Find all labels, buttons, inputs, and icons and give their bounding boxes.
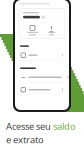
- staticText: Acesse seu: [6, 120, 51, 132]
- button[interactable]: Item da lista: [19, 72, 65, 82]
- button[interactable]: Pix: [23, 25, 42, 35]
- button[interactable]: Saldo disponível: [19, 9, 65, 38]
- staticText: e extrato: [6, 133, 44, 146]
- button[interactable]: Transferir: [42, 25, 61, 35]
- button[interactable]: Item da lista: [19, 50, 65, 60]
- staticText: saldo: [53, 120, 76, 132]
- button[interactable]: Item da lista: [19, 84, 65, 95]
